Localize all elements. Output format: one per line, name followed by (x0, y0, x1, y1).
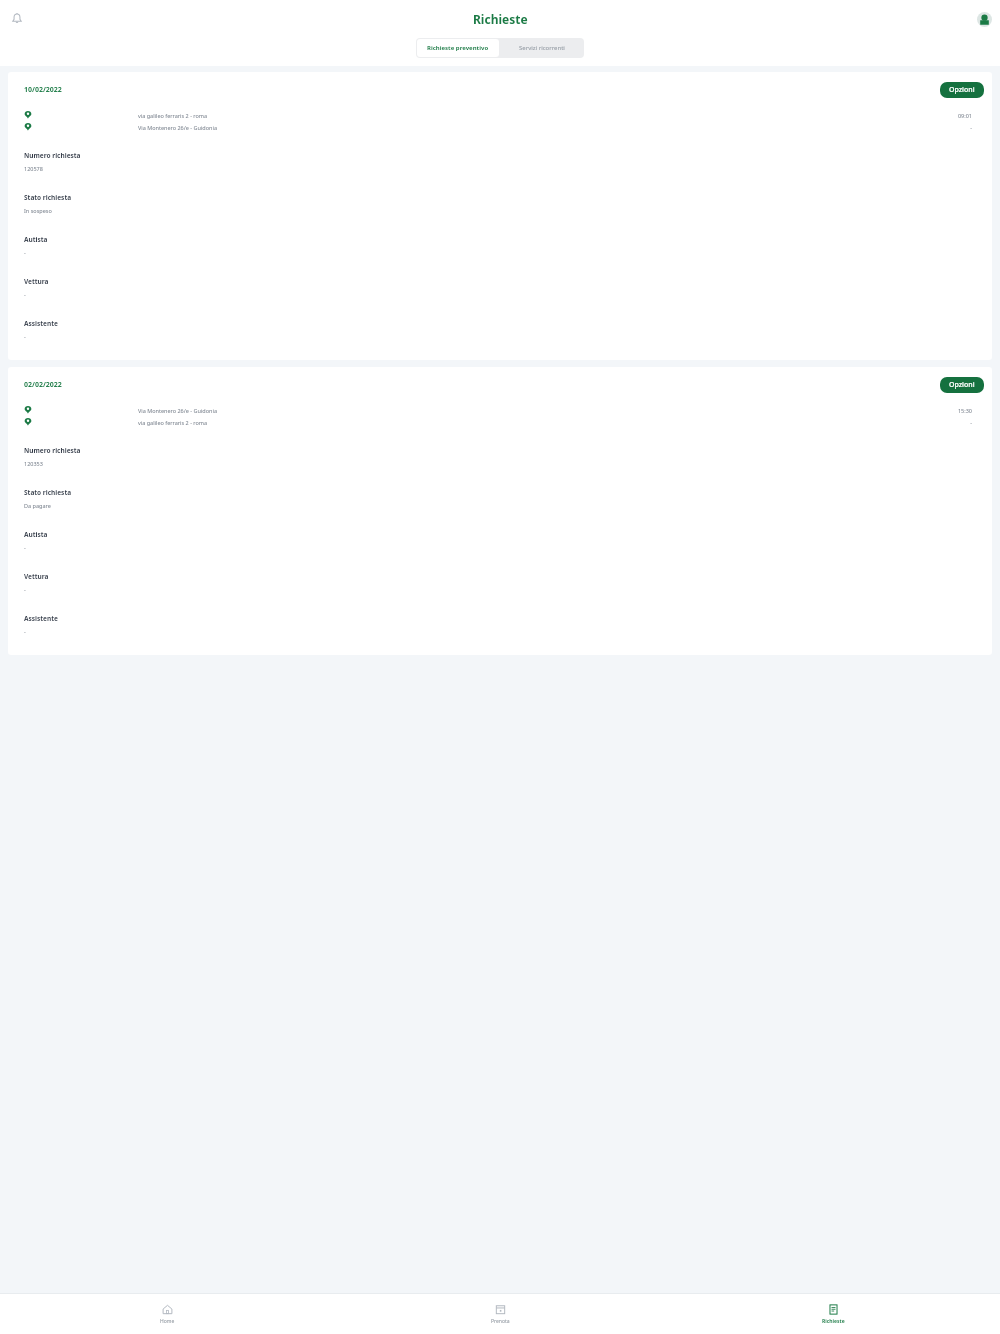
staticText: Via Montenero 26/e - Guidonia (138, 407, 957, 414)
staticText: Opzioni (949, 380, 975, 390)
staticText: Assistente (24, 319, 58, 328)
staticText: Richieste (473, 11, 528, 27)
staticText: Servizi ricorrenti (519, 44, 565, 52)
staticText: 02/02/2022 (24, 380, 62, 390)
staticText: Opzioni (949, 85, 975, 95)
staticText: Assistente (24, 614, 58, 623)
button[interactable]: Notifiche (6, 8, 28, 30)
button[interactable]: Profilo (976, 11, 992, 27)
button[interactable]: 02/02/2022 (8, 367, 992, 655)
staticText: Stato richiesta (24, 488, 72, 497)
staticText: 120578 (24, 165, 43, 172)
button[interactable]: Richieste preventivo (417, 39, 499, 57)
staticText: - (24, 291, 26, 298)
button[interactable]: Opzioni (940, 82, 984, 98)
button[interactable]: Servizi ricorrenti (500, 38, 584, 58)
staticText: - (24, 628, 26, 635)
staticText: 15:30 (957, 407, 972, 414)
staticText: Stato richiesta (24, 193, 72, 202)
staticText: - (24, 333, 26, 340)
staticText: - (970, 419, 972, 426)
staticText: Home (160, 1318, 175, 1325)
staticText: Autista (24, 235, 48, 244)
staticText: Vettura (24, 572, 49, 581)
staticText: - (24, 586, 26, 593)
staticText: Da pagare (24, 502, 51, 509)
staticText: - (24, 249, 26, 256)
staticText: - (970, 124, 972, 131)
button[interactable]: Prenota (334, 1294, 667, 1334)
button[interactable]: 10/02/2022 (8, 72, 992, 360)
staticText: Prenota (491, 1318, 510, 1325)
staticText: 10/02/2022 (24, 85, 62, 95)
staticText: Numero richiesta (24, 151, 81, 160)
staticText: In sospeso (24, 207, 52, 214)
staticText: Numero richiesta (24, 446, 81, 455)
staticText: via galileo ferraris 2 - roma (138, 419, 970, 426)
staticText: Autista (24, 530, 48, 539)
staticText: 09:01 (957, 112, 972, 119)
button[interactable]: Home (0, 1294, 334, 1334)
staticText: Richieste preventivo (427, 44, 489, 52)
staticText: via galileo ferraris 2 - roma (138, 112, 957, 119)
staticText: Richieste (822, 1318, 845, 1325)
staticText: - (24, 544, 26, 551)
button[interactable]: Opzioni (940, 377, 984, 393)
staticText: Vettura (24, 277, 49, 286)
staticText: Via Montenero 26/e - Guidonia (138, 124, 970, 131)
staticText: 120353 (24, 460, 43, 467)
button[interactable]: Richieste (667, 1294, 1000, 1334)
